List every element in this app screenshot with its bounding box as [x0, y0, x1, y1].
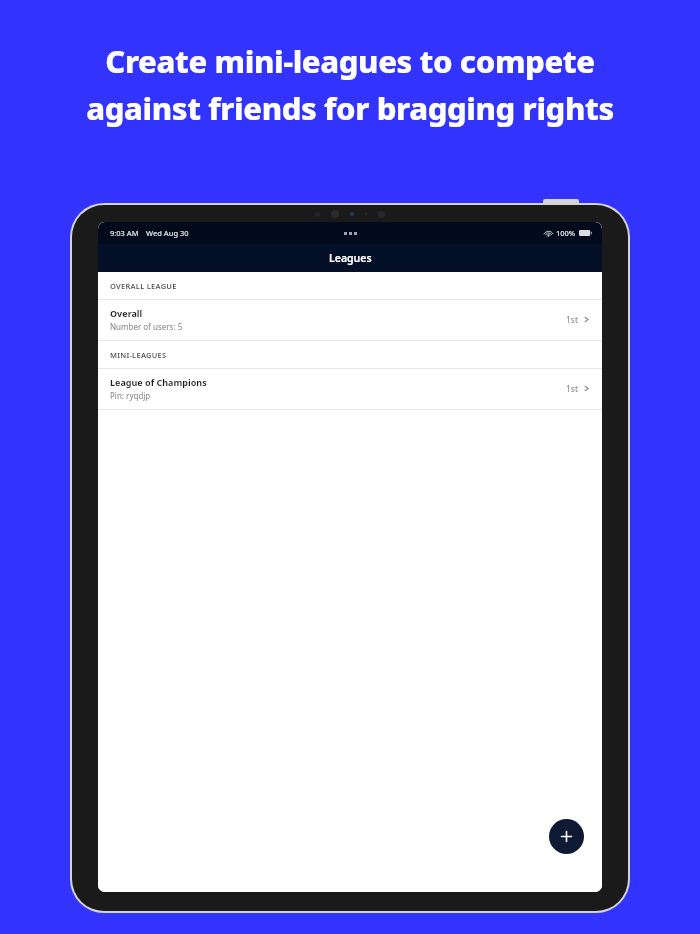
staticText: Leagues	[329, 251, 372, 265]
staticText: against friends for bragging rights	[86, 87, 614, 129]
staticText: Create mini-leagues to compete	[105, 40, 595, 82]
button[interactable]: League of Champions	[98, 369, 602, 409]
staticText: 100%	[556, 228, 576, 238]
staticText: Number of users: 5	[110, 321, 183, 332]
staticText: 1st	[566, 383, 579, 395]
button[interactable]: Create league	[549, 819, 584, 854]
staticText: Wed Aug 30	[146, 228, 189, 238]
staticText: League of Champions	[110, 376, 207, 388]
button[interactable]: Overall	[98, 300, 602, 340]
staticText: Overall	[110, 307, 143, 319]
staticText: Pin: ryqdjp	[110, 390, 151, 401]
staticText: OVERALL LEAGUE	[110, 281, 177, 291]
staticText: MINI-LEAGUES	[110, 350, 167, 360]
staticText: 9:03 AM	[110, 228, 139, 238]
staticText: 1st	[566, 314, 579, 326]
